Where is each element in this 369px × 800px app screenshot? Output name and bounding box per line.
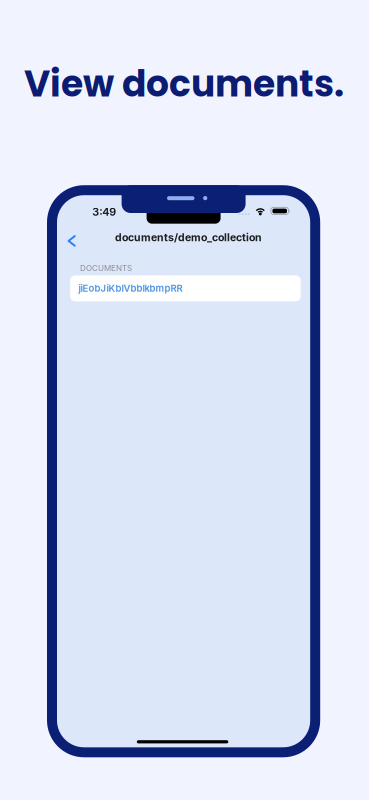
button[interactable]: jiEobJiKblVbblkbmpRR bbox=[70, 275, 301, 301]
staticText: DOCUMENTS bbox=[80, 263, 132, 273]
staticText: documents/demo_collection bbox=[115, 231, 262, 244]
staticText: jiEobJiKblVbblkbmpRR bbox=[79, 283, 183, 294]
staticText: 3:49 bbox=[92, 205, 116, 218]
button[interactable]: Back bbox=[57, 228, 87, 254]
staticText: View documents. bbox=[24, 59, 344, 109]
